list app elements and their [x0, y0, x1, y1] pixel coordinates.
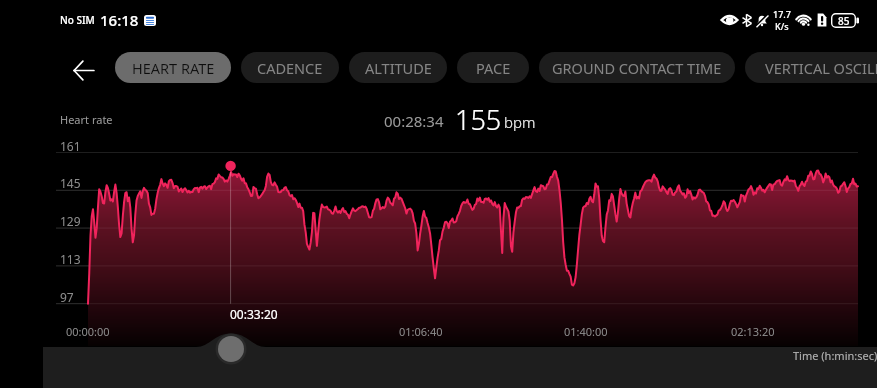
staticText: GROUND CONTACT TIME — [552, 58, 722, 78]
staticText: 01:40:00 — [564, 324, 608, 339]
staticText: HEART RATE — [132, 58, 215, 78]
staticText: 00:33:20 — [230, 306, 278, 322]
button[interactable]: CADENCE — [241, 52, 339, 83]
staticText: CADENCE — [257, 58, 323, 78]
button[interactable]: PACE — [457, 52, 529, 83]
button[interactable]: GROUND CONTACT TIME — [539, 52, 735, 83]
staticText: PACE — [476, 58, 511, 78]
staticText: 85 — [838, 14, 850, 28]
staticText: No SIM — [60, 13, 95, 27]
button[interactable]: Back — [68, 52, 100, 83]
staticText: Time (h:min:sec) — [793, 348, 877, 363]
button[interactable]: HEART RATE — [115, 52, 231, 83]
staticText: bpm — [504, 112, 536, 132]
button[interactable]: Scrub timeline — [215, 333, 247, 365]
staticText: 16:18 — [100, 10, 139, 30]
staticText: 113 — [60, 251, 81, 267]
staticText: 02:13:20 — [731, 324, 775, 339]
staticText: 161 — [60, 138, 81, 154]
button[interactable]: VERTICAL OSCILLATION — [745, 52, 877, 83]
staticText: ALTITUDE — [365, 58, 432, 78]
staticText: 97 — [60, 289, 74, 305]
staticText: 00:00:00 — [66, 324, 110, 339]
staticText: K/s — [775, 20, 789, 32]
staticText: 00:28:34 — [384, 111, 444, 131]
staticText: 17.7 — [773, 8, 791, 20]
staticText: 145 — [60, 175, 81, 191]
staticText: 129 — [60, 213, 81, 229]
staticText: VERTICAL OSCILLATION — [765, 58, 877, 78]
button[interactable]: ALTITUDE — [349, 52, 447, 83]
staticText: 01:06:40 — [399, 324, 443, 339]
staticText: Heart rate — [60, 112, 113, 127]
staticText: 155 — [455, 101, 502, 138]
